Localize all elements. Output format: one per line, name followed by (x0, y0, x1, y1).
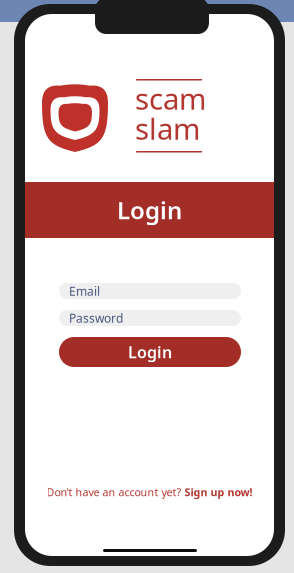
button[interactable]: Password (59, 310, 241, 326)
staticText: Sign up now! (184, 485, 252, 499)
staticText: Email (69, 283, 100, 299)
button[interactable]: Email (59, 283, 241, 299)
staticText: slam (135, 109, 200, 148)
staticText: Login (128, 341, 172, 363)
staticText: Don't have an account yet? (46, 485, 181, 499)
staticText: Login (117, 194, 182, 226)
button[interactable]: Login (59, 337, 241, 367)
staticText: Password (69, 310, 123, 326)
staticText: scam (135, 79, 206, 118)
button[interactable]: Don't have an account yet? (25, 486, 274, 498)
